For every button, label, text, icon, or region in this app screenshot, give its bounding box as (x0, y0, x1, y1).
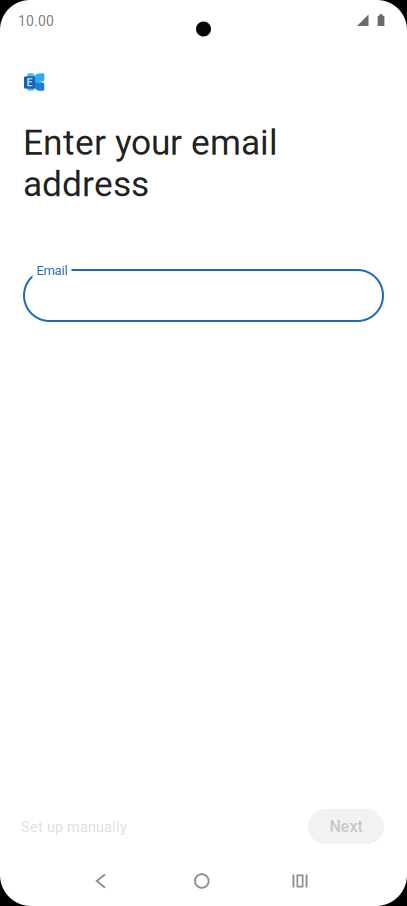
button[interactable]: Next (308, 809, 384, 844)
button[interactable]: Email (24, 258, 383, 317)
button[interactable]: Set up manually (0, 808, 148, 846)
staticText: Enter your email address (23, 122, 278, 205)
button[interactable]: Back (82, 859, 120, 902)
staticText: Set up manually (21, 819, 127, 835)
button[interactable]: Home (181, 860, 223, 902)
button[interactable]: Recent apps (278, 860, 321, 901)
staticText: Email (36, 263, 67, 278)
staticText: E (26, 76, 32, 89)
staticText: 10.00 (18, 13, 54, 29)
staticText: Next (329, 817, 362, 836)
